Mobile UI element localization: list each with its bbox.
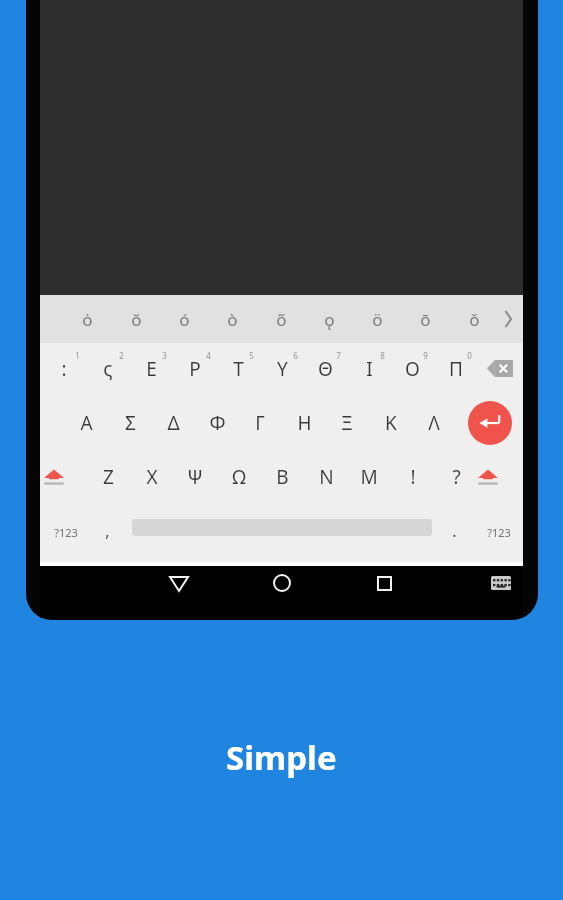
button[interactable] [283, 400, 325, 452]
staticText: 2 [119, 350, 124, 361]
button[interactable] [239, 400, 281, 452]
staticText: Γ [255, 410, 265, 436]
staticText: 1 [75, 350, 80, 361]
staticText: Ο [405, 356, 420, 382]
button[interactable] [109, 400, 151, 452]
staticText: ȯ [82, 308, 93, 331]
button[interactable] [261, 346, 303, 398]
button[interactable] [40, 295, 523, 343]
button[interactable] [66, 297, 110, 341]
staticText: ö [372, 308, 383, 331]
button[interactable]: Backspace [478, 346, 523, 398]
staticText: Κ [385, 410, 397, 436]
button[interactable] [131, 454, 173, 506]
button[interactable] [308, 297, 352, 341]
button[interactable] [259, 297, 303, 341]
staticText: ŏ [131, 308, 142, 331]
staticText: Ε [146, 356, 157, 382]
button[interactable] [87, 454, 129, 506]
button[interactable] [163, 297, 207, 341]
button[interactable] [152, 400, 194, 452]
button[interactable] [452, 297, 496, 341]
button[interactable]: Shift [478, 454, 520, 506]
button[interactable]: Shift [44, 454, 86, 506]
button[interactable] [404, 297, 448, 341]
staticText: Υ [277, 356, 288, 382]
button[interactable] [114, 297, 158, 341]
staticText: ?123 [487, 525, 511, 540]
button[interactable]: Home [258, 566, 306, 614]
staticText: ς [103, 356, 113, 382]
staticText: Δ [167, 410, 180, 436]
button[interactable] [130, 346, 172, 398]
button[interactable] [356, 297, 400, 341]
button[interactable] [326, 400, 368, 452]
staticText: 8 [380, 350, 385, 361]
staticText: Λ [428, 410, 440, 436]
staticText: Μ [360, 464, 378, 490]
button[interactable] [440, 508, 470, 558]
button[interactable] [305, 454, 347, 506]
staticText: Ζ [103, 464, 114, 490]
button[interactable] [92, 508, 126, 558]
staticText: Ξ [341, 410, 353, 436]
staticText: ō [420, 308, 431, 331]
button[interactable] [44, 508, 90, 558]
staticText: Ψ [187, 464, 203, 490]
staticText: Η [297, 410, 312, 436]
staticText: Τ [233, 356, 244, 382]
staticText: õ [276, 308, 287, 331]
button[interactable] [174, 346, 216, 398]
button[interactable] [477, 508, 523, 558]
button[interactable]: Enter [468, 401, 512, 445]
button[interactable]: Recents [361, 566, 409, 614]
staticText: 0 [467, 350, 472, 361]
staticText: 7 [336, 350, 341, 361]
staticText: . [452, 520, 457, 542]
staticText: ǫ [324, 308, 335, 331]
staticText: ó [179, 308, 190, 331]
staticText: 6 [293, 350, 298, 361]
staticText: Ι [366, 356, 373, 382]
button[interactable] [211, 297, 255, 341]
button[interactable] [348, 346, 390, 398]
staticText: Σ [125, 410, 136, 436]
staticText: Ρ [189, 356, 201, 382]
staticText: Β [276, 464, 289, 490]
staticText: 4 [206, 350, 211, 361]
button[interactable] [348, 454, 390, 506]
staticText: Χ [146, 464, 158, 490]
staticText: ǒ [469, 308, 480, 331]
staticText: ?123 [54, 525, 78, 540]
button[interactable] [65, 400, 107, 452]
button[interactable] [392, 454, 434, 506]
staticText: Θ [318, 356, 333, 382]
button[interactable]: More suggestions [492, 297, 522, 341]
button[interactable] [370, 400, 412, 452]
button[interactable] [218, 454, 260, 506]
button[interactable]: Hide keyboard [155, 566, 203, 614]
button[interactable] [413, 400, 455, 452]
staticText: ò [227, 308, 238, 331]
button[interactable] [304, 346, 346, 398]
button[interactable] [435, 454, 477, 506]
button[interactable] [217, 346, 259, 398]
staticText: 5 [249, 350, 254, 361]
staticText: 9 [423, 350, 428, 361]
staticText: Simple [226, 735, 337, 780]
button[interactable] [174, 454, 216, 506]
button[interactable] [391, 346, 433, 398]
button[interactable]: Switch keyboard [478, 566, 520, 614]
button[interactable] [196, 400, 238, 452]
button[interactable] [435, 346, 477, 398]
staticText: ? [452, 464, 461, 490]
staticText: : [61, 356, 67, 382]
button[interactable] [43, 346, 85, 398]
staticText: Π [449, 356, 463, 382]
staticText: , [105, 520, 110, 542]
staticText: 3 [162, 350, 167, 361]
button[interactable] [87, 346, 129, 398]
staticText: Ω [232, 464, 246, 490]
button[interactable] [261, 454, 303, 506]
